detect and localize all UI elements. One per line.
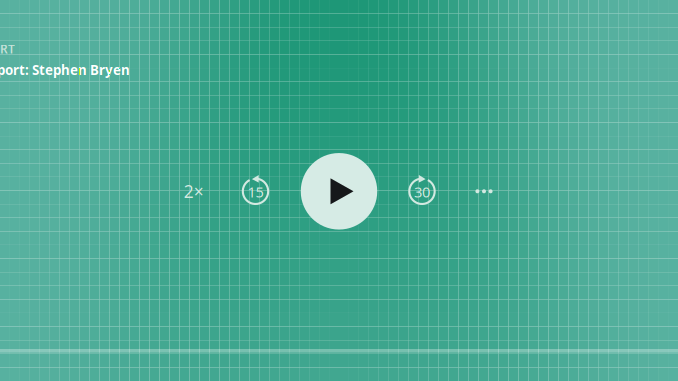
button[interactable]: 2× — [172, 169, 216, 213]
staticText: Special Report: Stephen Bryen — [0, 61, 130, 79]
button[interactable]: Skip forward 30 seconds — [400, 169, 444, 213]
button[interactable]: Skip back 15 seconds — [233, 169, 277, 213]
staticText: 15 — [247, 182, 263, 202]
staticText: 30 — [414, 182, 430, 202]
button[interactable]: Play — [301, 153, 377, 230]
staticText: NEWS REPORT — [0, 41, 15, 57]
staticText: 2× — [184, 180, 204, 203]
button[interactable]: More — [462, 169, 506, 213]
